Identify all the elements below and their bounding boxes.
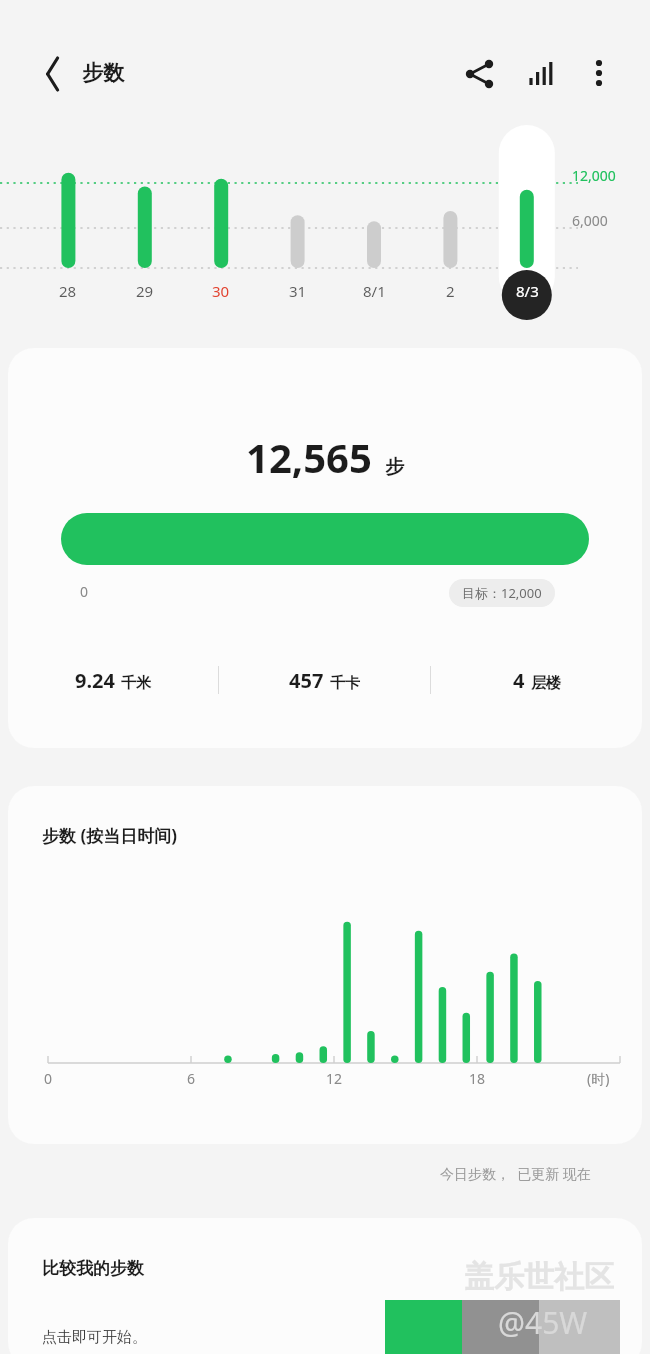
button[interactable]: Back [24,48,76,100]
staticText: 18 [469,1069,486,1088]
button[interactable]: More options [576,50,622,96]
button[interactable]: Chart [517,50,565,98]
button[interactable]: 比较我的步数 [8,1218,642,1354]
button[interactable]: 12,565 [8,348,642,748]
staticText: 目标：12,000 [462,584,542,602]
staticText: 12,000 [572,166,616,185]
staticText: 8/3 [516,281,539,301]
staticText: 0 [80,582,89,601]
staticText: 盖乐世社区 [464,1258,614,1296]
staticText: 6 [187,1069,196,1088]
staticText: 步 [385,455,404,479]
staticText: 点击即可开始。 [42,1328,147,1347]
staticText: (时) [587,1069,610,1088]
staticText: 8/1 [363,281,386,301]
staticText: 12,565 [246,430,372,484]
staticText: 步数 [82,60,124,86]
staticText: 12 [326,1069,343,1088]
staticText: 457 [289,667,324,694]
staticText: 千米 [121,674,151,693]
staticText: 4 [513,667,525,694]
staticText: 29 [136,281,154,301]
staticText: 31 [289,281,307,301]
button[interactable]: Share [456,50,504,98]
staticText: 步数 (按当日时间) [42,824,177,847]
staticText: 层楼 [531,674,561,693]
staticText: 28 [59,281,77,301]
staticText: 30 [212,281,230,301]
button[interactable]: 步数 (按当日时间) [8,786,642,1144]
staticText: 6,000 [572,211,608,230]
staticText: 比较我的步数 [42,1258,144,1279]
staticText: 0 [44,1069,53,1088]
staticText: 千卡 [330,674,360,693]
staticText: 2 [446,281,455,301]
staticText: 9.24 [75,667,115,694]
staticText: @45W [498,1302,588,1343]
staticText: 今日步数， 已更新 现在 [440,1164,591,1183]
